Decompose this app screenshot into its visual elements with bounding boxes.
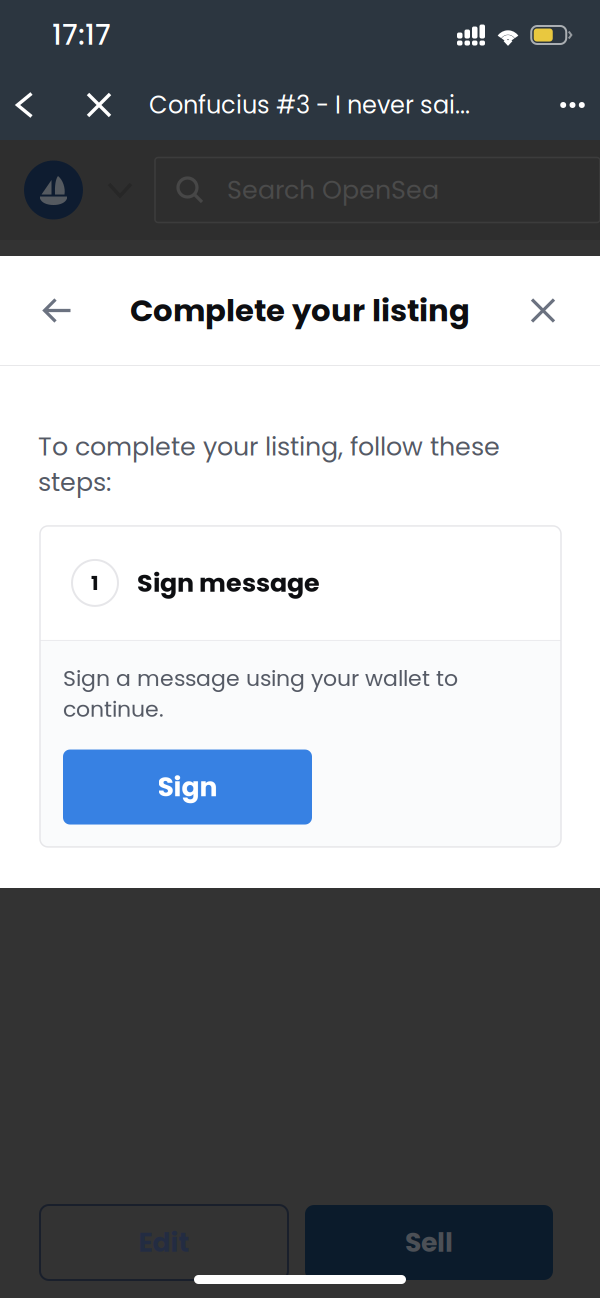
button[interactable]: Sell [305, 1205, 553, 1280]
staticText: Sign message [137, 565, 320, 601]
button[interactable]: Back [0, 70, 49, 140]
staticText: Sell [405, 1224, 453, 1261]
staticText: Edit [138, 1224, 189, 1261]
staticText: 1 [91, 569, 99, 597]
staticText: 17:17 [52, 15, 111, 55]
button[interactable]: More [545, 70, 600, 140]
staticText: To complete your listing, follow these s… [38, 429, 500, 500]
button[interactable]: Edit [40, 1205, 288, 1280]
staticText: Sign a message using your wallet to cont… [63, 663, 458, 724]
staticText: Search OpenSea [227, 172, 439, 208]
button[interactable]: Close [486, 256, 600, 365]
staticText: Complete your listing [130, 289, 470, 332]
staticText: Sign [157, 768, 217, 806]
button[interactable]: Close [49, 70, 149, 140]
button[interactable]: Back [0, 256, 114, 365]
button[interactable]: Sign [63, 749, 312, 824]
staticText: Confucius #3 - I never sai... [149, 88, 470, 122]
